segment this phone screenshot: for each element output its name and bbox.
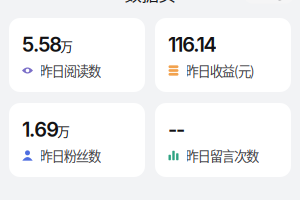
staticText: 万 <box>60 37 73 55</box>
staticText: 1.69 <box>22 117 59 142</box>
staticText: 昨日阅读数 <box>39 61 101 80</box>
button[interactable]: -- <box>155 103 291 177</box>
staticText: 5.58 <box>22 32 62 57</box>
staticText: 昨日收益(元) <box>185 61 255 80</box>
staticText: 昨日留言次数 <box>185 146 259 165</box>
staticText: -- <box>168 117 185 142</box>
button[interactable]: 5.58 <box>9 18 145 92</box>
button[interactable]: Mini program menu <box>243 0 295 3</box>
staticText: 昨日粉丝数 <box>39 146 101 165</box>
staticText: 116.14 <box>168 32 216 57</box>
staticText: 万 <box>57 122 70 140</box>
staticText: 数据页 <box>124 0 175 6</box>
button[interactable]: 116.14 <box>155 18 291 92</box>
button[interactable]: 1.69 <box>9 103 145 177</box>
